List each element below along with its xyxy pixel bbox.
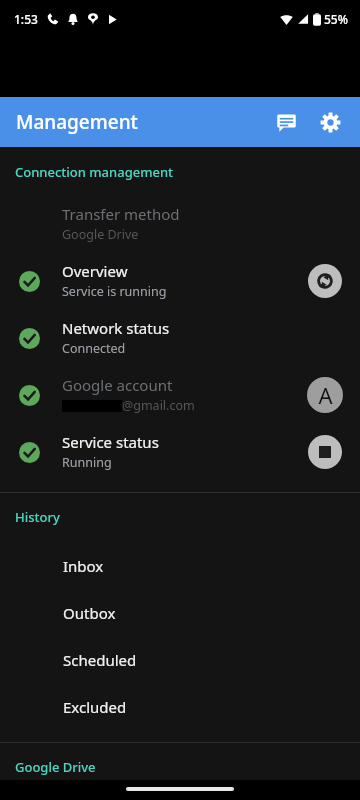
staticText: Connection management bbox=[15, 163, 174, 181]
button[interactable]: Outbox bbox=[0, 589, 360, 636]
staticText: Service status bbox=[62, 432, 159, 452]
button[interactable]: Overview bbox=[0, 252, 360, 309]
staticText: Scheduled bbox=[63, 650, 137, 670]
staticText: Transfer method bbox=[62, 204, 180, 224]
button[interactable]: Service status bbox=[0, 423, 360, 480]
staticText: 55% bbox=[324, 11, 348, 27]
button[interactable]: Inbox bbox=[0, 542, 360, 589]
staticText: @gmail.com bbox=[122, 397, 195, 414]
button[interactable]: Account avatar bbox=[307, 377, 343, 413]
button[interactable]: Messages bbox=[264, 100, 308, 144]
button[interactable]: Excluded bbox=[0, 683, 360, 730]
staticText: Google Drive bbox=[62, 226, 139, 243]
button[interactable]: Stop service bbox=[308, 435, 342, 469]
staticText: Overview bbox=[62, 261, 128, 281]
staticText: Excluded bbox=[63, 697, 127, 717]
staticText: Service is running bbox=[62, 283, 167, 300]
staticText: Outbox bbox=[63, 603, 116, 623]
button[interactable]: Google account bbox=[0, 366, 360, 423]
staticText: Management bbox=[16, 109, 138, 135]
staticText: A bbox=[318, 380, 333, 410]
button[interactable]: Network status bbox=[0, 309, 360, 366]
button[interactable]: Transfer method bbox=[0, 195, 360, 252]
staticText: 1:53 bbox=[14, 11, 38, 27]
staticText: Running bbox=[62, 454, 112, 471]
button[interactable]: Settings bbox=[308, 100, 352, 144]
staticText: History bbox=[15, 508, 60, 526]
staticText: Connected bbox=[62, 340, 126, 357]
staticText: Google Drive bbox=[15, 758, 96, 776]
staticText: Inbox bbox=[63, 556, 104, 576]
staticText: Google account bbox=[62, 375, 173, 395]
button[interactable]: Scheduled bbox=[0, 636, 360, 683]
button[interactable]: Sync bbox=[308, 264, 342, 298]
staticText: Network status bbox=[62, 318, 170, 338]
